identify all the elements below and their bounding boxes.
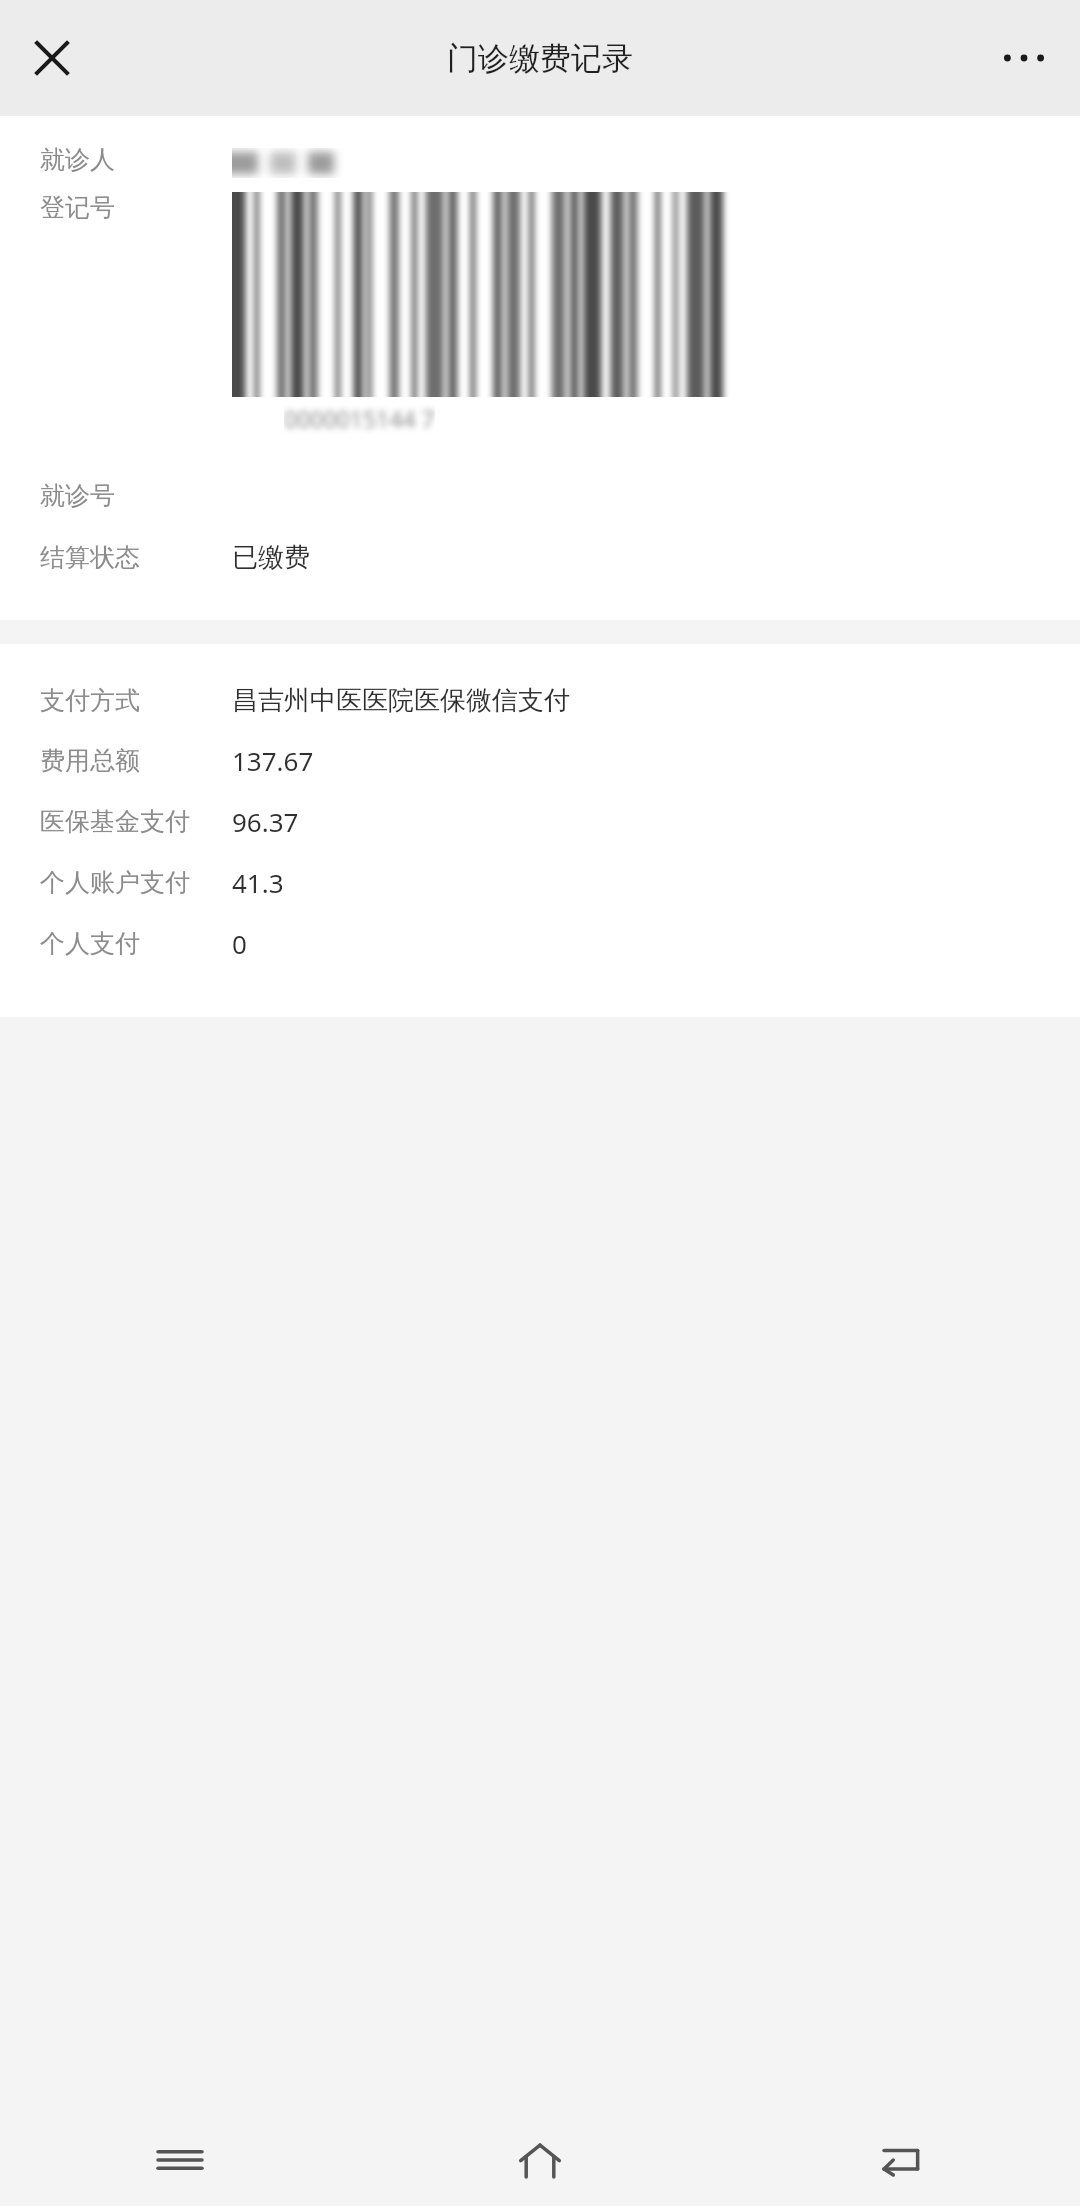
- staticText: 137.67: [232, 743, 314, 778]
- staticText: 登记号: [40, 192, 232, 223]
- staticText: 个人支付: [40, 928, 232, 959]
- button[interactable]: More options: [992, 26, 1056, 90]
- button[interactable]: Back: [720, 2114, 1080, 2206]
- staticText: 昌吉州中医医院医保微信支付: [232, 684, 570, 717]
- staticText: 医保基金支付: [40, 806, 232, 837]
- staticText: 结算状态: [40, 542, 232, 573]
- staticText: 就诊号: [40, 480, 232, 511]
- staticText: 门诊缴费记录: [447, 39, 633, 78]
- staticText: 0000015144 7: [284, 403, 435, 434]
- staticText: 96.37: [232, 804, 299, 839]
- staticText: 0: [232, 926, 247, 961]
- staticText: 已缴费: [232, 541, 310, 574]
- button[interactable]: Home: [360, 2114, 720, 2206]
- button[interactable]: Close: [20, 26, 84, 90]
- staticText: 支付方式: [40, 685, 232, 716]
- staticText: 费用总额: [40, 745, 232, 776]
- staticText: 41.3: [232, 865, 284, 900]
- staticText: 个人账户支付: [40, 867, 232, 898]
- staticText: 就诊人: [40, 144, 232, 175]
- button[interactable]: Recent apps: [0, 2114, 360, 2206]
